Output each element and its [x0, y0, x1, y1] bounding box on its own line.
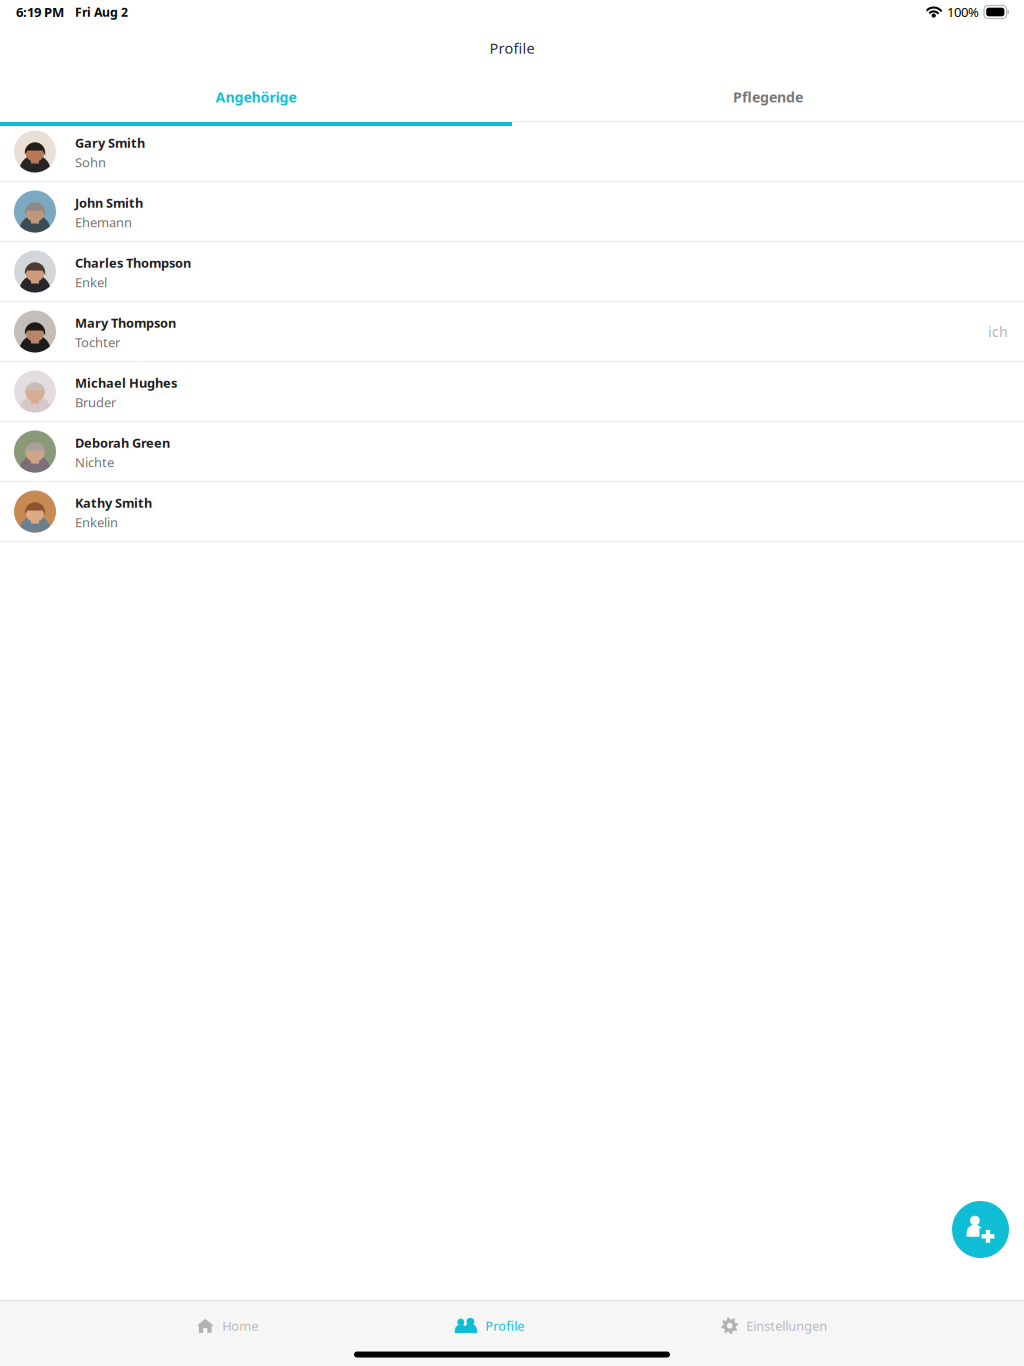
staticText: Kathy Smith	[75, 494, 152, 511]
staticText: Mary Thompson	[75, 314, 176, 331]
staticText: Enkel	[75, 273, 107, 291]
button[interactable]: Mary Thompson	[0, 302, 1024, 362]
staticText: Gary Smith	[75, 134, 145, 151]
button[interactable]: Einstellungen	[721, 1301, 827, 1343]
staticText: Einstellungen	[746, 1317, 827, 1334]
button[interactable]: Gary Smith	[0, 122, 1024, 182]
staticText: Sohn	[75, 153, 106, 171]
staticText: Profile	[485, 1317, 524, 1334]
staticText: John Smith	[75, 194, 143, 211]
button[interactable]: Profile	[455, 1301, 524, 1343]
staticText: Charles Thompson	[75, 254, 191, 271]
staticText: Fri Aug 2	[75, 4, 128, 20]
staticText: Bruder	[75, 393, 116, 411]
button[interactable]: John Smith	[0, 182, 1024, 242]
staticText: Home	[222, 1317, 258, 1334]
staticText: 100%	[947, 3, 979, 21]
staticText: Tochter	[75, 333, 120, 351]
staticText: Angehörige	[215, 87, 296, 107]
button[interactable]: Pflegende	[512, 72, 1024, 122]
staticText: Enkelin	[75, 513, 118, 531]
staticText: Michael Hughes	[75, 374, 177, 391]
staticText: Pflegende	[733, 87, 803, 107]
button[interactable]: Deborah Green	[0, 422, 1024, 482]
button[interactable]: Charles Thompson	[0, 242, 1024, 302]
staticText: ich	[988, 322, 1008, 341]
staticText: Ehemann	[75, 213, 132, 231]
button[interactable]: Angehörige	[0, 72, 512, 122]
staticText: Deborah Green	[75, 434, 170, 451]
button[interactable]: Kathy Smith	[0, 482, 1024, 542]
button[interactable]: Add person	[952, 1201, 1009, 1258]
staticText: Nichte	[75, 453, 114, 471]
staticText: 6:19 PM	[16, 3, 64, 21]
button[interactable]: Home	[197, 1301, 258, 1343]
button[interactable]: Michael Hughes	[0, 362, 1024, 422]
staticText: Profile	[489, 38, 534, 58]
